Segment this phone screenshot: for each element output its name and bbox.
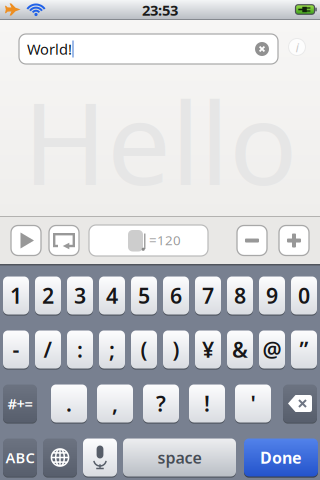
button[interactable]: & xyxy=(227,329,253,369)
button[interactable]: ” xyxy=(291,329,317,369)
button[interactable]: Delete xyxy=(283,383,317,423)
staticText: , xyxy=(112,389,118,418)
staticText: : xyxy=(77,335,83,364)
staticText: 7 xyxy=(202,281,214,310)
staticText: ? xyxy=(156,389,166,418)
staticText: ¥ xyxy=(202,335,214,364)
staticText: 8 xyxy=(234,281,246,310)
staticText: 5 xyxy=(138,281,150,310)
button[interactable]: 7 xyxy=(195,275,221,315)
staticText: 3 xyxy=(74,281,86,310)
staticText: 6 xyxy=(170,281,182,310)
staticText: @ xyxy=(262,335,281,364)
button[interactable]: Decrease tempo xyxy=(237,225,267,255)
button[interactable]: @ xyxy=(259,329,285,369)
staticText: - xyxy=(12,335,19,364)
staticText: ! xyxy=(204,389,210,418)
staticText: World! xyxy=(27,39,72,59)
button[interactable]: 9 xyxy=(259,275,285,315)
button[interactable]: ) xyxy=(163,329,189,369)
button[interactable]: 2 xyxy=(35,275,61,315)
staticText: 9 xyxy=(266,281,278,310)
button[interactable]: , xyxy=(97,383,133,423)
button[interactable]: More symbols xyxy=(3,383,37,423)
button[interactable]: . xyxy=(51,383,87,423)
button[interactable]: Dictate xyxy=(83,437,117,477)
button[interactable]: 0 xyxy=(291,275,317,315)
staticText: ABC xyxy=(5,448,34,467)
button[interactable]: ! xyxy=(189,383,225,423)
staticText: 1 xyxy=(10,281,22,310)
staticText: ; xyxy=(109,335,115,364)
staticText: 0 xyxy=(298,281,310,310)
staticText: Done xyxy=(260,447,302,468)
button[interactable]: / xyxy=(35,329,61,369)
button[interactable]: ? xyxy=(143,383,179,423)
button[interactable]: Done xyxy=(244,437,318,477)
staticText: 2 xyxy=(42,281,54,310)
staticText: / xyxy=(43,335,52,364)
button[interactable]: Next keyboard xyxy=(43,437,77,477)
button[interactable]: ( xyxy=(131,329,157,369)
button[interactable]: Clear text xyxy=(255,42,269,56)
staticText: ( xyxy=(140,335,147,364)
button[interactable]: ' xyxy=(235,383,271,423)
button[interactable]: ¥ xyxy=(195,329,221,369)
staticText: . xyxy=(66,389,72,418)
staticText: 4 xyxy=(106,281,118,310)
button[interactable]: space xyxy=(123,437,236,477)
button[interactable]: - xyxy=(3,329,29,369)
button[interactable]: Info xyxy=(288,38,305,55)
button[interactable]: Increase tempo xyxy=(279,225,309,255)
button[interactable]: 8 xyxy=(227,275,253,315)
staticText: & xyxy=(232,335,248,364)
staticText: =120 xyxy=(149,231,181,249)
button[interactable]: 3 xyxy=(67,275,93,315)
button[interactable]: ; xyxy=(99,329,125,369)
button[interactable]: 1 xyxy=(3,275,29,315)
button[interactable]: 4 xyxy=(99,275,125,315)
button[interactable]: Play xyxy=(11,225,41,255)
staticText: space xyxy=(157,447,201,468)
staticText: ) xyxy=(172,335,179,364)
staticText: i xyxy=(295,38,298,56)
staticText: 23:53 xyxy=(142,0,178,20)
staticText: ' xyxy=(250,389,255,418)
staticText: Hello xyxy=(23,66,298,216)
button[interactable]: : xyxy=(67,329,93,369)
button[interactable]: Letters xyxy=(3,437,37,477)
button[interactable]: Repeat xyxy=(49,225,79,255)
staticText: #+= xyxy=(7,394,32,413)
button[interactable]: 6 xyxy=(163,275,189,315)
button[interactable]: 5 xyxy=(131,275,157,315)
staticText: ” xyxy=(299,335,308,364)
